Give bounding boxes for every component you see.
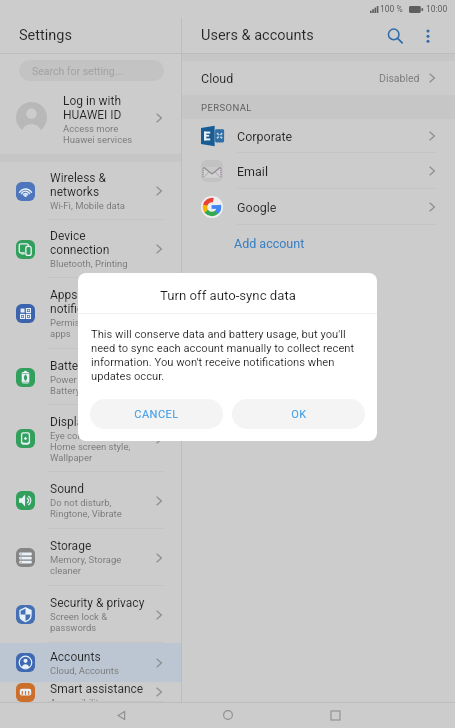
staticText: Search for setting... — [32, 65, 124, 77]
staticText: Wallpaper — [50, 452, 93, 463]
staticText: 10:00 — [426, 4, 448, 14]
staticText: HUAWEI ID — [63, 108, 122, 122]
button[interactable]: CANCEL — [90, 399, 223, 429]
staticText: cleaner — [50, 565, 81, 576]
staticText: Storage — [50, 539, 92, 553]
staticText: Cloud, Accounts — [50, 665, 119, 676]
staticText: Sound — [50, 482, 84, 496]
button[interactable]: Device — [0, 220, 181, 278]
staticText: Security & privacy — [50, 596, 145, 610]
button[interactable]: Log in with — [0, 81, 181, 154]
staticText: Google — [237, 200, 277, 215]
staticText: Access more — [63, 123, 119, 134]
staticText: Display — [50, 415, 89, 429]
staticText: Turn off auto-sync data — [160, 288, 296, 303]
staticText: Email — [237, 164, 268, 179]
staticText: notifications — [50, 302, 117, 316]
staticText: Disabled — [379, 72, 420, 84]
staticText: Eye comfort, — [50, 430, 103, 441]
staticText: Huawei services — [63, 134, 133, 145]
staticText: apps — [50, 328, 71, 339]
staticText: passwords — [50, 622, 97, 633]
button[interactable]: Accounts — [0, 643, 181, 682]
staticText: networks — [50, 185, 100, 199]
button[interactable]: Apps & — [0, 278, 181, 349]
button[interactable]: Smart assistance — [0, 682, 181, 702]
staticText: Memory, Storage — [50, 554, 122, 565]
button[interactable]: Cloud — [182, 61, 455, 95]
staticText: Wi-Fi, Mobile data — [50, 200, 126, 211]
staticText: OK — [291, 408, 307, 421]
button[interactable]: Search — [378, 19, 412, 53]
button[interactable]: Home — [215, 702, 241, 728]
staticText: Ringtone, Vibrate — [50, 508, 122, 519]
button[interactable]: Google — [182, 189, 455, 225]
staticText: Users & accounts — [201, 27, 314, 44]
staticText: CANCEL — [134, 408, 179, 421]
staticText: Wireless & — [50, 171, 106, 185]
staticText: 100 % — [380, 4, 403, 14]
staticText: Battery usage — [50, 385, 109, 396]
button[interactable]: Search for setting... — [19, 60, 164, 81]
staticText: Corporate — [237, 129, 293, 144]
staticText: Home screen style, — [50, 441, 131, 452]
staticText: Add account — [234, 236, 305, 251]
staticText: This will conserve data and battery usag… — [91, 328, 355, 383]
button[interactable]: Wireless & — [0, 162, 181, 220]
staticText: PERSONAL — [201, 102, 252, 113]
button[interactable]: Recent apps — [322, 702, 348, 728]
staticText: Do not disturb, — [50, 497, 112, 508]
staticText: Device — [50, 229, 86, 243]
staticText: connection — [50, 243, 110, 257]
staticText: Apps & — [50, 288, 88, 302]
staticText: Accounts — [50, 650, 101, 664]
staticText: Power saving mode, — [50, 374, 135, 385]
button[interactable]: Battery — [0, 349, 181, 405]
staticText: Battery — [50, 359, 89, 373]
staticText: Settings — [19, 27, 72, 44]
staticText: Screen lock & — [50, 611, 108, 622]
button[interactable]: Email — [182, 153, 455, 189]
button[interactable]: Display — [0, 405, 181, 472]
button[interactable]: More options — [414, 22, 442, 50]
button[interactable]: Security & privacy — [0, 586, 181, 643]
staticText: Permissions, Default — [50, 317, 138, 328]
button[interactable]: Sound — [0, 472, 181, 529]
staticText: Log in with — [63, 94, 122, 108]
button[interactable]: OK — [232, 399, 365, 429]
staticText: Accessibility — [50, 697, 104, 702]
button[interactable]: Back — [108, 702, 134, 728]
button[interactable]: Add account — [182, 225, 455, 261]
staticText: Bluetooth, Printing — [50, 258, 128, 269]
staticText: Smart assistance — [50, 682, 144, 696]
staticText: Cloud — [201, 71, 234, 86]
button[interactable]: Storage — [0, 529, 181, 586]
button[interactable]: Corporate — [182, 119, 455, 153]
